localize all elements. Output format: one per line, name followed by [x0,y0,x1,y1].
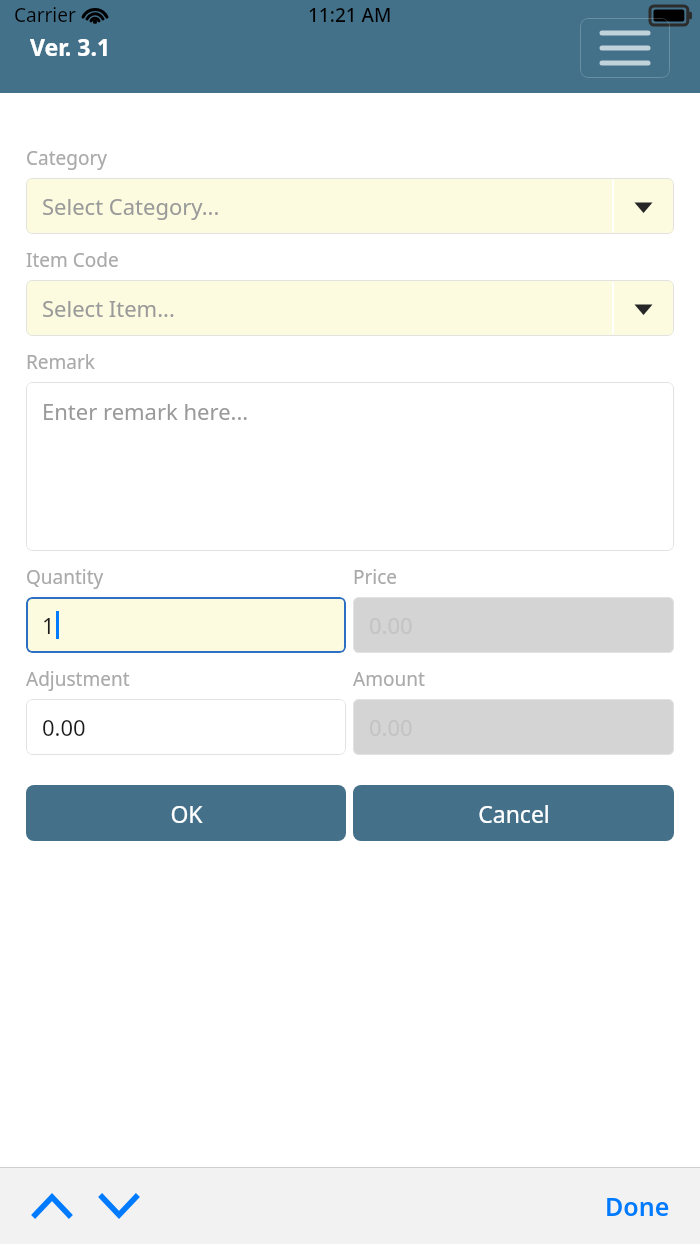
button[interactable]: 0.00 [353,597,674,653]
button[interactable]: Cancel [353,785,674,841]
button[interactable]: Previous field [26,1180,78,1232]
staticText: Category [26,145,107,171]
staticText: Remark [26,349,95,375]
button[interactable]: Next field [93,1180,145,1232]
staticText: Select Category... [42,191,220,221]
staticText: 0.00 [369,610,413,640]
button[interactable]: Done [595,1181,680,1231]
staticText: 0.00 [369,712,413,742]
button[interactable]: Menu [580,18,670,78]
staticText: Done [605,1189,670,1223]
staticText: Quantity [26,564,104,590]
staticText: Price [353,564,398,590]
staticText: Carrier [14,2,76,28]
staticText: Ver. 3.1 [30,31,111,62]
staticText: Adjustment [26,666,130,692]
staticText: Amount [353,666,425,692]
staticText: Cancel [478,798,550,829]
button[interactable]: Select Item... [26,280,674,336]
button[interactable]: OK [26,785,346,841]
staticText: Enter remark here... [42,396,249,426]
button[interactable]: Select Category... [26,178,674,234]
staticText: 1 [42,610,55,640]
staticText: Select Item... [42,293,175,323]
staticText: 0.00 [42,712,86,742]
button[interactable]: 0.00 [26,699,346,755]
staticText: OK [170,798,203,829]
staticText: Item Code [26,247,119,273]
staticText: 11:21 AM [308,2,392,28]
button[interactable]: Enter remark here... [26,382,674,551]
button[interactable]: 1 [26,597,346,653]
button[interactable]: 0.00 [353,699,674,755]
